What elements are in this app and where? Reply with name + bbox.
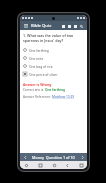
- button[interactable]: Recent apps: [37, 162, 43, 168]
- staticText: One mite: [29, 56, 44, 60]
- button[interactable]: Open navigation menu: [23, 23, 29, 29]
- staticText: Answer is Wrong: [23, 82, 52, 87]
- button[interactable]: One bag of rice: [23, 62, 84, 70]
- button[interactable]: Search: [78, 23, 84, 29]
- button[interactable]: Flag: [72, 23, 78, 29]
- staticText: Money Question 1 of 10: [32, 155, 75, 160]
- button[interactable]: One piece of silver: [23, 70, 84, 78]
- staticText: One piece of silver: [29, 72, 58, 76]
- button[interactable]: Matthew 10:29: [52, 95, 75, 99]
- staticText: Matthew 10:29: [52, 95, 75, 99]
- button[interactable]: Bookmark: [66, 23, 72, 29]
- staticText: One farthing: [29, 48, 49, 52]
- staticText: 1. What was the value of two sparrows in…: [23, 33, 84, 43]
- button[interactable]: Back: [64, 162, 70, 168]
- button[interactable]: Grid view: [60, 23, 66, 29]
- staticText: One bag of rice: [29, 64, 53, 68]
- button[interactable]: One mite: [23, 54, 84, 62]
- button[interactable]: One farthing: [23, 46, 84, 54]
- staticText: Correct ans is: [23, 88, 45, 92]
- button[interactable]: Previous question: [22, 154, 28, 160]
- button[interactable]: Accessibility: [23, 162, 29, 168]
- staticText: Answer Reference:: [23, 95, 52, 99]
- button[interactable]: Home: [51, 162, 57, 168]
- staticText: Bible Quiz: [31, 23, 52, 29]
- button[interactable]: Screenshot: [78, 162, 84, 168]
- staticText: One farthing: [45, 88, 65, 92]
- button[interactable]: Next question: [79, 154, 85, 160]
